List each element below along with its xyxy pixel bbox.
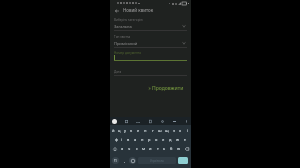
staticText: і xyxy=(121,137,123,142)
staticText: Виберіть категорію xyxy=(114,18,143,22)
button[interactable]: Symbols xyxy=(112,157,119,164)
staticText: ш xyxy=(158,128,162,133)
button[interactable]: у xyxy=(122,125,128,135)
staticText: ?1 xyxy=(114,159,117,163)
button[interactable]: л xyxy=(160,135,167,144)
button[interactable]: е xyxy=(135,125,142,135)
staticText: н xyxy=(144,128,147,133)
button[interactable]: ч xyxy=(126,144,133,153)
button[interactable]: а xyxy=(132,135,139,144)
button[interactable]: Back xyxy=(113,7,120,14)
button[interactable]: Emoji xyxy=(129,157,136,164)
staticText: м xyxy=(142,146,146,151)
staticText: т xyxy=(157,146,159,151)
staticText: Дата xyxy=(114,70,122,74)
button[interactable]: я xyxy=(119,144,126,153)
button[interactable]: б xyxy=(168,144,175,153)
staticText: Номер документа xyxy=(114,51,141,55)
staticText: Продовжити xyxy=(152,85,184,92)
staticText: з xyxy=(173,128,175,133)
staticText: а xyxy=(134,137,137,142)
staticText: р xyxy=(148,137,151,142)
staticText: щ xyxy=(165,128,169,133)
button[interactable]: ш xyxy=(156,125,163,135)
button[interactable]: Backspace xyxy=(182,144,191,153)
button[interactable]: GIF xyxy=(135,118,141,124)
button[interactable]: к xyxy=(128,125,135,135)
staticText: д xyxy=(169,137,172,142)
button[interactable]: Enter xyxy=(178,157,188,164)
button[interactable]: Settings xyxy=(159,118,165,124)
staticText: и xyxy=(149,146,152,151)
button[interactable]: і xyxy=(119,135,125,144)
button[interactable]: п xyxy=(139,135,146,144)
button[interactable]: More xyxy=(171,118,177,124)
staticText: ч xyxy=(128,146,131,151)
button[interactable]: Space xyxy=(138,157,176,164)
button[interactable]: ф xyxy=(113,135,119,144)
button[interactable]: х xyxy=(177,125,184,135)
button[interactable]: ю xyxy=(175,144,182,153)
staticText: Загальна xyxy=(114,24,132,29)
button[interactable]: р xyxy=(146,135,153,144)
staticText: ю xyxy=(177,146,181,151)
button[interactable]: т xyxy=(154,144,161,153)
staticText: ц xyxy=(118,128,121,133)
staticText: ї xyxy=(187,128,189,133)
staticText: Приміський xyxy=(114,41,138,46)
button[interactable]: є xyxy=(181,135,188,144)
button[interactable]: ї xyxy=(184,125,191,135)
staticText: ф xyxy=(115,137,118,142)
staticText: у xyxy=(124,128,127,133)
button[interactable]: Google xyxy=(112,119,117,124)
staticText: й xyxy=(112,128,115,133)
button[interactable]: д xyxy=(167,135,174,144)
button[interactable]: й xyxy=(110,125,116,135)
button[interactable]: г xyxy=(149,125,156,135)
button[interactable]: с xyxy=(133,144,140,153)
button[interactable]: Приміський xyxy=(114,40,186,46)
staticText: ь xyxy=(163,146,166,151)
button[interactable]: ж xyxy=(174,135,181,144)
button[interactable]: Clipboard xyxy=(123,118,129,124)
staticText: Тип квитка xyxy=(114,35,131,39)
staticText: е xyxy=(137,128,140,133)
button[interactable]: ь xyxy=(161,144,168,153)
staticText: GIF xyxy=(136,120,140,123)
staticText: п xyxy=(141,137,144,142)
button[interactable]: и xyxy=(147,144,154,153)
button[interactable]: м xyxy=(140,144,147,153)
staticText: Українська xyxy=(150,159,164,163)
staticText: к xyxy=(130,128,133,133)
button[interactable]: щ xyxy=(163,125,170,135)
button[interactable]: Shift xyxy=(110,144,119,153)
button[interactable]: в xyxy=(125,135,132,144)
button[interactable]: Продовжити xyxy=(110,84,184,93)
staticText: о xyxy=(155,137,158,142)
staticText: є xyxy=(184,137,186,142)
staticText: Новий квиток xyxy=(123,7,154,13)
staticText: в xyxy=(127,137,130,142)
staticText: г xyxy=(152,128,154,133)
staticText: ж xyxy=(176,137,180,142)
button[interactable]: Stickers xyxy=(147,118,153,124)
staticText: х xyxy=(179,128,182,133)
staticText: б xyxy=(170,146,173,151)
staticText: я xyxy=(121,146,124,151)
button[interactable]: н xyxy=(142,125,149,135)
button[interactable]: ц xyxy=(116,125,122,135)
button[interactable]: з xyxy=(170,125,177,135)
button[interactable]: Загальна xyxy=(114,23,186,29)
staticText: , xyxy=(124,158,126,164)
button[interactable]: Voice xyxy=(183,118,189,124)
staticText: л xyxy=(162,137,165,142)
staticText: с xyxy=(136,146,138,151)
button[interactable]: о xyxy=(153,135,160,144)
button[interactable]: Comma xyxy=(122,158,128,164)
